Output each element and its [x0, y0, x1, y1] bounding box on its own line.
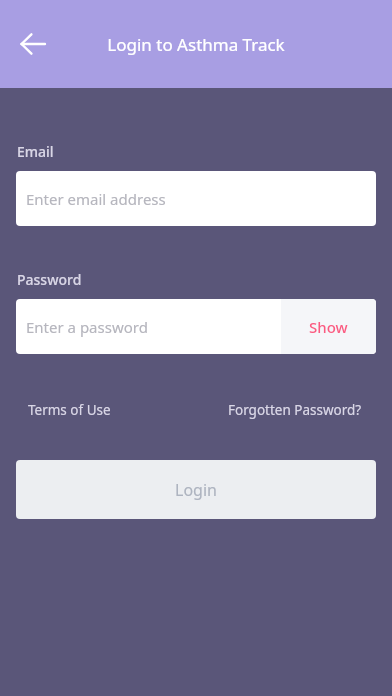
button[interactable]: Forgotten Password? [228, 396, 362, 424]
button[interactable]: Login [16, 460, 376, 519]
button[interactable]: Show [281, 299, 376, 354]
staticText: Enter email address [26, 189, 166, 209]
button[interactable]: Back [7, 18, 59, 70]
staticText: Forgotten Password? [228, 401, 362, 419]
staticText: Password [17, 270, 82, 289]
staticText: Terms of Use [28, 401, 111, 419]
staticText: Login [175, 479, 217, 501]
staticText: Login to Asthma Track [107, 33, 285, 56]
button[interactable]: Enter a password [16, 299, 281, 354]
staticText: Enter a password [26, 317, 148, 337]
button[interactable]: Terms of Use [28, 396, 111, 424]
staticText: Show [309, 317, 348, 337]
staticText: Email [17, 142, 54, 161]
button[interactable]: Enter email address [16, 171, 376, 226]
